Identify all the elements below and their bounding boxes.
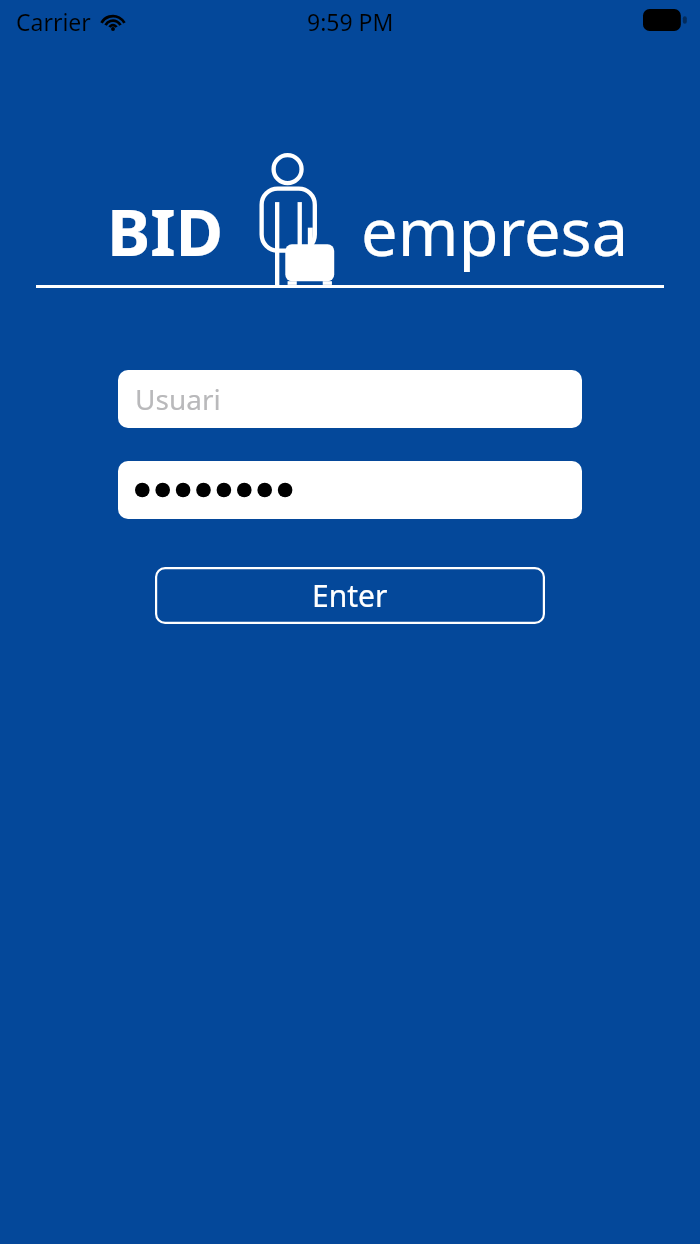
button[interactable]: Enter — [155, 567, 545, 624]
staticText: empresa — [361, 187, 629, 276]
staticText: Carrier — [16, 6, 91, 37]
button[interactable]: Password — [118, 461, 582, 519]
staticText: Enter — [312, 575, 388, 616]
staticText: Usuari — [135, 380, 221, 418]
staticText: BID — [107, 187, 224, 276]
staticText: 9:59 PM — [307, 6, 394, 37]
button[interactable]: Usuari — [118, 370, 582, 428]
other: BID empresa logo — [254, 146, 346, 288]
